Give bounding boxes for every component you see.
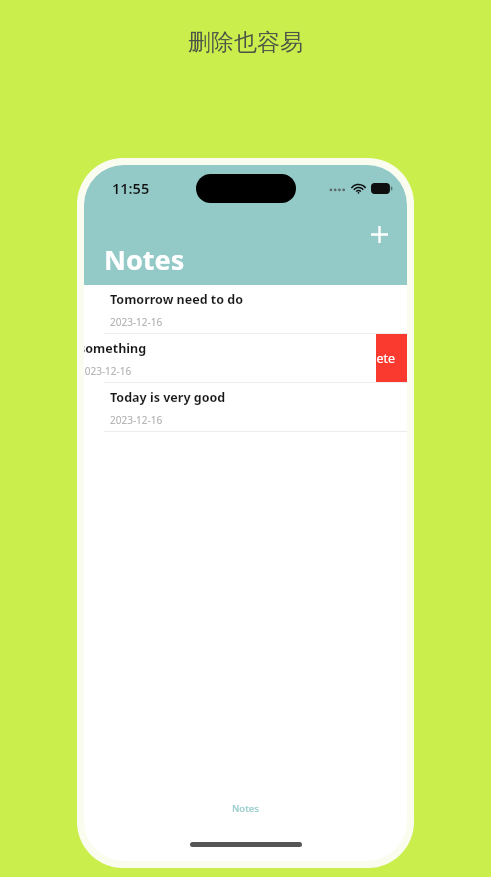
button[interactable]: something [84,334,376,383]
staticText: something [84,340,147,357]
button[interactable]: Tomorrow need to do [84,285,407,334]
staticText: Delete [357,350,396,367]
button[interactable]: Delete [346,334,407,383]
staticText: 2023-12-16 [110,315,163,329]
button[interactable]: Add note [363,218,395,250]
staticText: Today is very good [110,389,226,406]
staticText: 2023-12-16 [84,364,132,378]
button[interactable]: Today is very good [84,383,407,432]
staticText: Tomorrow need to do [110,291,243,308]
staticText: 删除也容易 [188,28,303,57]
button[interactable]: Notes [218,798,273,819]
staticText: 2023-12-16 [110,413,163,427]
staticText: Notes [104,241,185,278]
staticText: Notes [232,802,259,815]
staticText: 11:55 [112,178,150,198]
